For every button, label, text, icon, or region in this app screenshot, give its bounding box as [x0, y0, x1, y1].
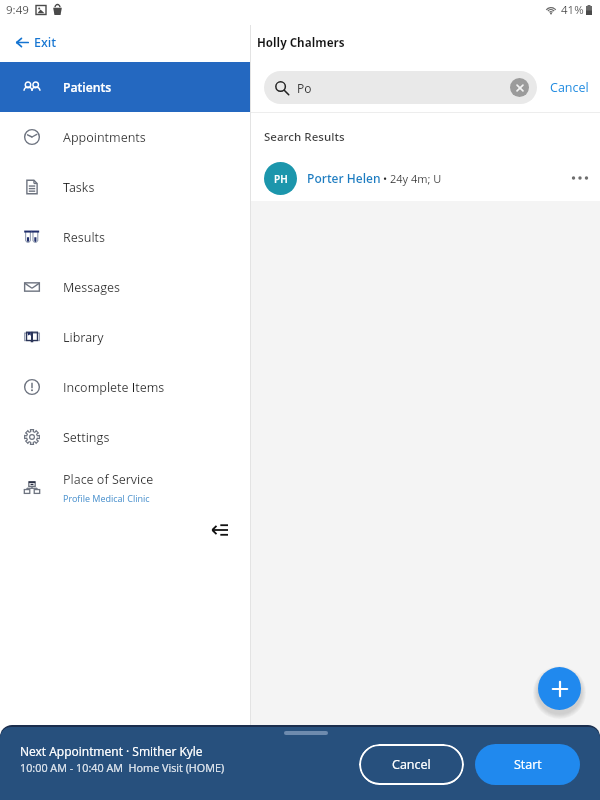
staticText: Cancel — [392, 756, 431, 773]
staticText: Cancel — [550, 79, 589, 96]
button[interactable]: Tasks — [0, 162, 250, 212]
staticText: • 24y 4m; U — [383, 171, 442, 186]
staticText: Start — [514, 756, 542, 773]
staticText: Holly Chalmers — [257, 35, 345, 51]
button[interactable]: Add — [538, 667, 581, 710]
staticText: Exit — [34, 34, 57, 51]
button[interactable]: Po — [264, 71, 537, 104]
staticText: Results — [63, 229, 105, 246]
staticText: 9:49 — [6, 2, 29, 18]
staticText: Profile Medical Clinic — [63, 492, 150, 504]
button[interactable]: Collapse menu — [206, 516, 234, 544]
button[interactable]: Messages — [0, 262, 250, 312]
button[interactable]: PH — [251, 154, 600, 202]
button[interactable]: Library — [0, 312, 250, 362]
button[interactable]: Clear search — [510, 78, 529, 97]
button[interactable]: Exit — [0, 25, 250, 62]
staticText: Next Appointment · Smither Kyle — [20, 743, 203, 759]
staticText: Porter Helen — [307, 170, 381, 186]
staticText: Settings — [63, 429, 110, 446]
staticText: 41% — [561, 2, 584, 18]
button[interactable]: Cancel — [359, 744, 464, 785]
staticText: Appointments — [63, 129, 146, 146]
button[interactable]: Results — [0, 212, 250, 262]
staticText: Search Results — [264, 129, 345, 145]
button[interactable]: Patients — [0, 62, 250, 112]
button[interactable]: Start — [475, 744, 580, 785]
staticText: Incomplete Items — [63, 379, 165, 396]
staticText: Patients — [63, 79, 112, 96]
button[interactable]: Cancel — [544, 73, 595, 102]
staticText: Messages — [63, 279, 121, 296]
staticText: Library — [63, 329, 104, 346]
button[interactable]: Appointments — [0, 112, 250, 162]
staticText: Tasks — [63, 179, 95, 196]
button[interactable]: Settings — [0, 412, 250, 462]
staticText: Place of Service — [63, 471, 154, 488]
staticText: PH — [274, 172, 288, 186]
button[interactable]: Place of Service — [0, 462, 250, 512]
staticText: Po — [297, 80, 312, 96]
button[interactable]: More options — [566, 164, 594, 192]
button[interactable]: Incomplete Items — [0, 362, 250, 412]
staticText: 10:00 AM - 10:40 AM Home Visit (HOME) — [20, 760, 225, 775]
